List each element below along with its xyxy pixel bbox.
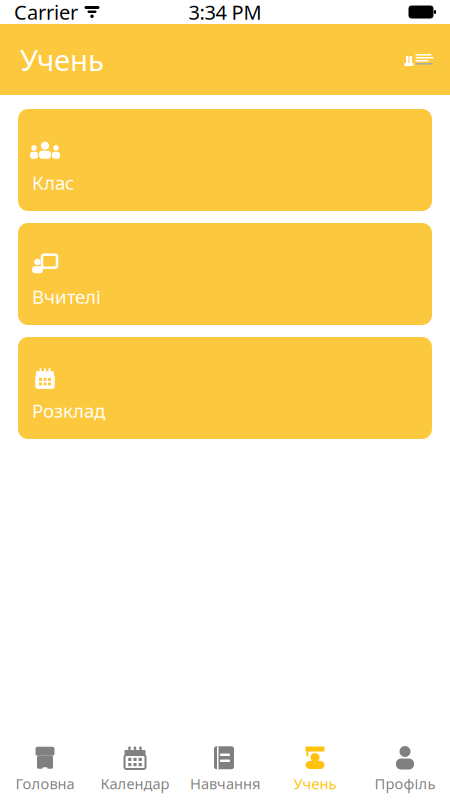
button[interactable]: Календар — [90, 738, 180, 800]
staticText: Розклад — [32, 398, 105, 423]
button[interactable]: Клас — [18, 109, 432, 211]
button[interactable]: Школа — [402, 46, 436, 72]
staticText: Клас — [32, 170, 74, 195]
button[interactable]: Профіль — [360, 738, 450, 800]
staticText: Вчителі — [32, 284, 101, 309]
button[interactable]: Розклад — [18, 337, 432, 439]
staticText: Навчання — [190, 774, 260, 793]
staticText: Учень — [293, 774, 336, 793]
staticText: 3:34 PM — [188, 0, 261, 25]
staticText: Carrier — [14, 0, 78, 25]
staticText: Календар — [100, 774, 169, 793]
staticText: Учень — [20, 40, 104, 79]
staticText: Головна — [15, 774, 74, 793]
staticText: Профіль — [374, 774, 435, 793]
button[interactable]: Учень — [270, 738, 360, 800]
button[interactable]: Головна — [0, 738, 90, 800]
button[interactable]: Навчання — [180, 738, 270, 800]
button[interactable]: Вчителі — [18, 223, 432, 325]
